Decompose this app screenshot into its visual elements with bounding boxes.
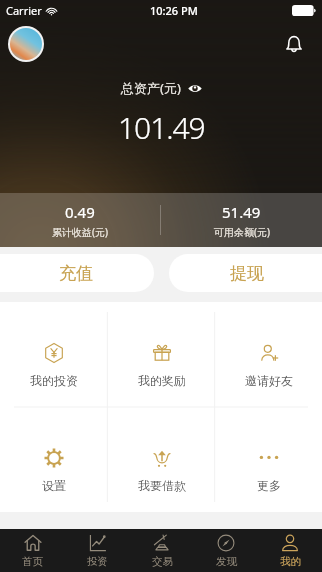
staticText: 我的奖励 (138, 373, 186, 388)
button[interactable]: 邀请好友 (215, 302, 322, 407)
staticText: 累计收益(元) (52, 225, 108, 239)
button[interactable]: 我的奖励 (108, 302, 215, 407)
button[interactable]: 我要借款 (108, 407, 215, 512)
button[interactable]: 提现 (169, 254, 322, 292)
staticText: 充值 (59, 263, 93, 284)
staticText: 邀请好友 (245, 373, 293, 388)
staticText: 101.49 (118, 107, 205, 148)
staticText: 我要借款 (138, 478, 186, 493)
staticText: 发现 (216, 555, 237, 568)
staticText: 总资产(元) (121, 79, 181, 97)
button[interactable]: 交易 (130, 529, 194, 572)
staticText: Carrier (6, 3, 42, 18)
button[interactable]: 更多 (215, 407, 322, 512)
button[interactable]: 首页 (0, 529, 65, 572)
button[interactable]: 我的投资 (0, 302, 108, 407)
staticText: 10:26 PM (150, 3, 198, 18)
staticText: 0.49 (65, 202, 95, 222)
staticText: 我的 (280, 555, 301, 568)
staticText: 交易 (152, 555, 173, 568)
button[interactable]: Notifications (278, 28, 310, 60)
button[interactable]: 发现 (194, 529, 258, 572)
button[interactable]: Profile (8, 26, 44, 62)
button[interactable]: 设置 (0, 407, 108, 512)
staticText: 提现 (230, 263, 264, 284)
button[interactable]: 投资 (65, 529, 130, 572)
staticText: 更多 (257, 478, 281, 493)
staticText: 首页 (22, 555, 43, 568)
staticText: 投资 (87, 555, 108, 568)
staticText: 我的投资 (30, 373, 78, 388)
staticText: 可用余额(元) (214, 225, 270, 239)
staticText: 设置 (42, 478, 66, 493)
button[interactable]: 我的 (258, 529, 322, 572)
staticText: 51.49 (222, 202, 261, 222)
button[interactable]: 充值 (0, 254, 154, 292)
